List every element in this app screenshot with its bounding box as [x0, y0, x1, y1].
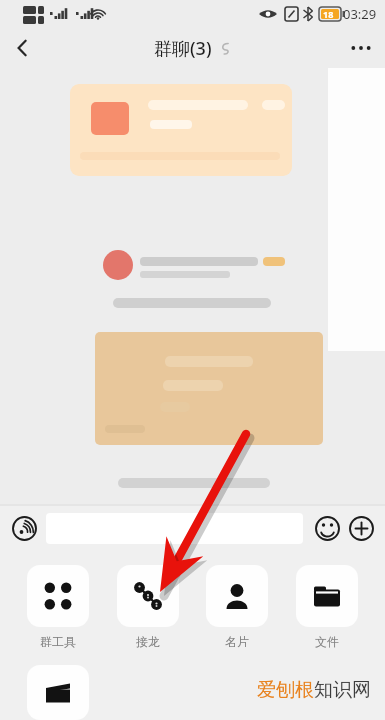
button[interactable]: More options: [337, 28, 385, 68]
staticText: 文件: [315, 634, 339, 649]
staticText: 名片: [225, 634, 249, 649]
staticText: 18: [323, 8, 334, 20]
button[interactable]: 接龙: [117, 565, 179, 649]
button[interactable]: 群工具: [27, 565, 89, 649]
button[interactable]: Back: [0, 28, 46, 68]
button[interactable]: Wallet: [27, 665, 89, 720]
button[interactable]: [46, 513, 303, 544]
staticText: 群工具: [40, 634, 76, 649]
staticText: 爱刨根知识网: [257, 678, 371, 702]
staticText: 接龙: [136, 634, 160, 649]
button[interactable]: Emoji: [311, 512, 343, 544]
staticText: 群聊(3): [154, 36, 212, 61]
button[interactable]: Voice input: [8, 512, 40, 544]
staticText: 03:29: [343, 5, 377, 23]
button[interactable]: 文件: [296, 565, 358, 649]
button[interactable]: More functions: [345, 512, 377, 544]
button[interactable]: 名片: [206, 565, 268, 649]
